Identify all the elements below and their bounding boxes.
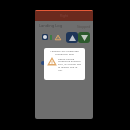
- staticText: Device catalog timestamp dropped sync, a…: [58, 57, 82, 72]
- staticText: Landing Log Suspended connection fault: [47, 49, 82, 55]
- staticText: Stopped: [77, 24, 91, 29]
- button[interactable]: Record: [42, 34, 48, 40]
- staticText: Landing Log: [39, 23, 63, 28]
- button[interactable]: Land: [78, 32, 90, 43]
- staticText: Flight: [60, 14, 68, 18]
- button[interactable]: Take off: [66, 32, 78, 43]
